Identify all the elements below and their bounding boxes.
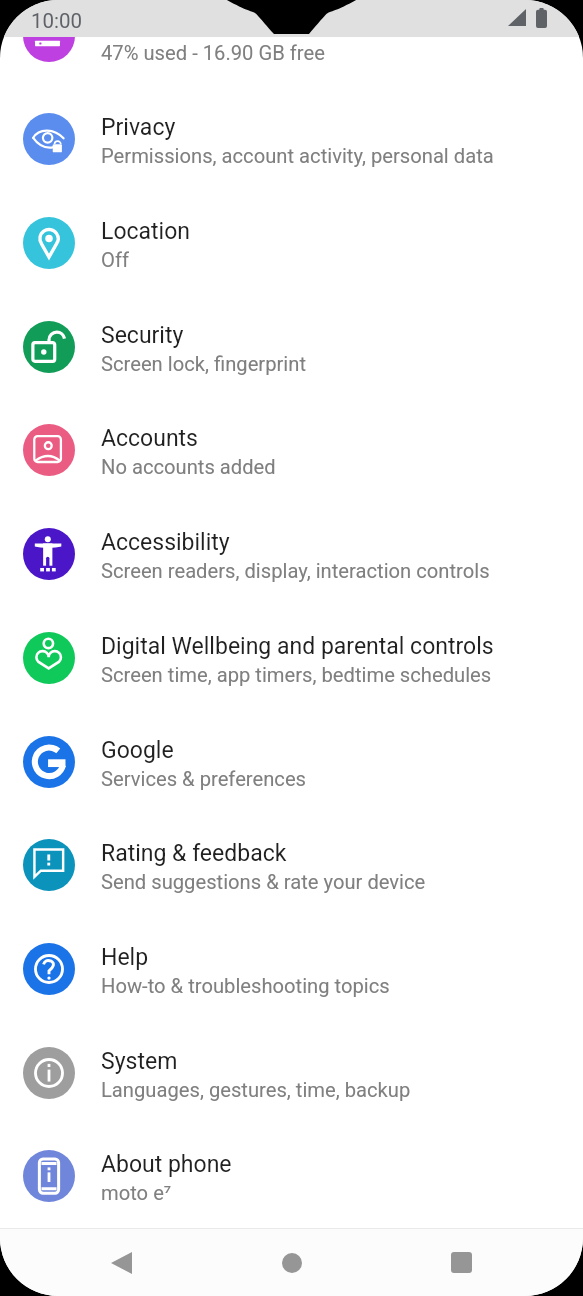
staticText: How-to & troubleshooting topics	[101, 974, 390, 998]
button[interactable]: Accessibility	[0, 502, 583, 606]
staticText: Screen time, app timers, bedtime schedul…	[101, 663, 492, 687]
button[interactable]: Location	[0, 191, 583, 295]
staticText: Help	[101, 944, 149, 971]
staticText: Languages, gestures, time, backup	[101, 1078, 411, 1102]
button[interactable]: System	[0, 1021, 583, 1125]
staticText: Off	[101, 248, 129, 272]
staticText: Privacy	[101, 114, 176, 141]
staticText: 10:00	[31, 9, 83, 33]
staticText: Location	[101, 218, 190, 245]
button[interactable]: Google	[0, 710, 583, 814]
button[interactable]: Rating & feedback	[0, 813, 583, 917]
staticText: Storage	[101, 11, 181, 38]
staticText: Rating & feedback	[101, 840, 287, 867]
staticText: Screen lock, fingerprint	[101, 352, 307, 376]
staticText: Google	[101, 737, 174, 764]
button[interactable]: About phone	[0, 1124, 583, 1228]
staticText: Send suggestions & rate your device	[101, 870, 426, 894]
button[interactable]: Security	[0, 295, 583, 399]
button[interactable]: Storage	[0, 0, 583, 88]
staticText: 47% used - 16.90 GB free	[101, 41, 325, 65]
staticText: No accounts added	[101, 455, 276, 479]
staticText: Screen readers, display, interaction con…	[101, 559, 490, 583]
button[interactable]: Digital Wellbeing and parental controls	[0, 606, 583, 710]
staticText: Services & preferences	[101, 767, 307, 791]
staticText: About phone	[101, 1151, 232, 1178]
button[interactable]: Back	[0, 1229, 243, 1296]
staticText: moto e⁷	[101, 1181, 172, 1205]
staticText: Accessibility	[101, 529, 230, 556]
button[interactable]: Help	[0, 917, 583, 1021]
staticText: Accounts	[101, 425, 198, 452]
button[interactable]: Accounts	[0, 398, 583, 502]
button[interactable]: Home	[243, 1229, 340, 1296]
button[interactable]: Privacy	[0, 87, 583, 191]
staticText: Digital Wellbeing and parental controls	[101, 633, 494, 660]
staticText: Security	[101, 322, 184, 349]
staticText: Permissions, account activity, personal …	[101, 144, 494, 168]
staticText: System	[101, 1048, 178, 1075]
button[interactable]: Recents	[340, 1229, 583, 1296]
